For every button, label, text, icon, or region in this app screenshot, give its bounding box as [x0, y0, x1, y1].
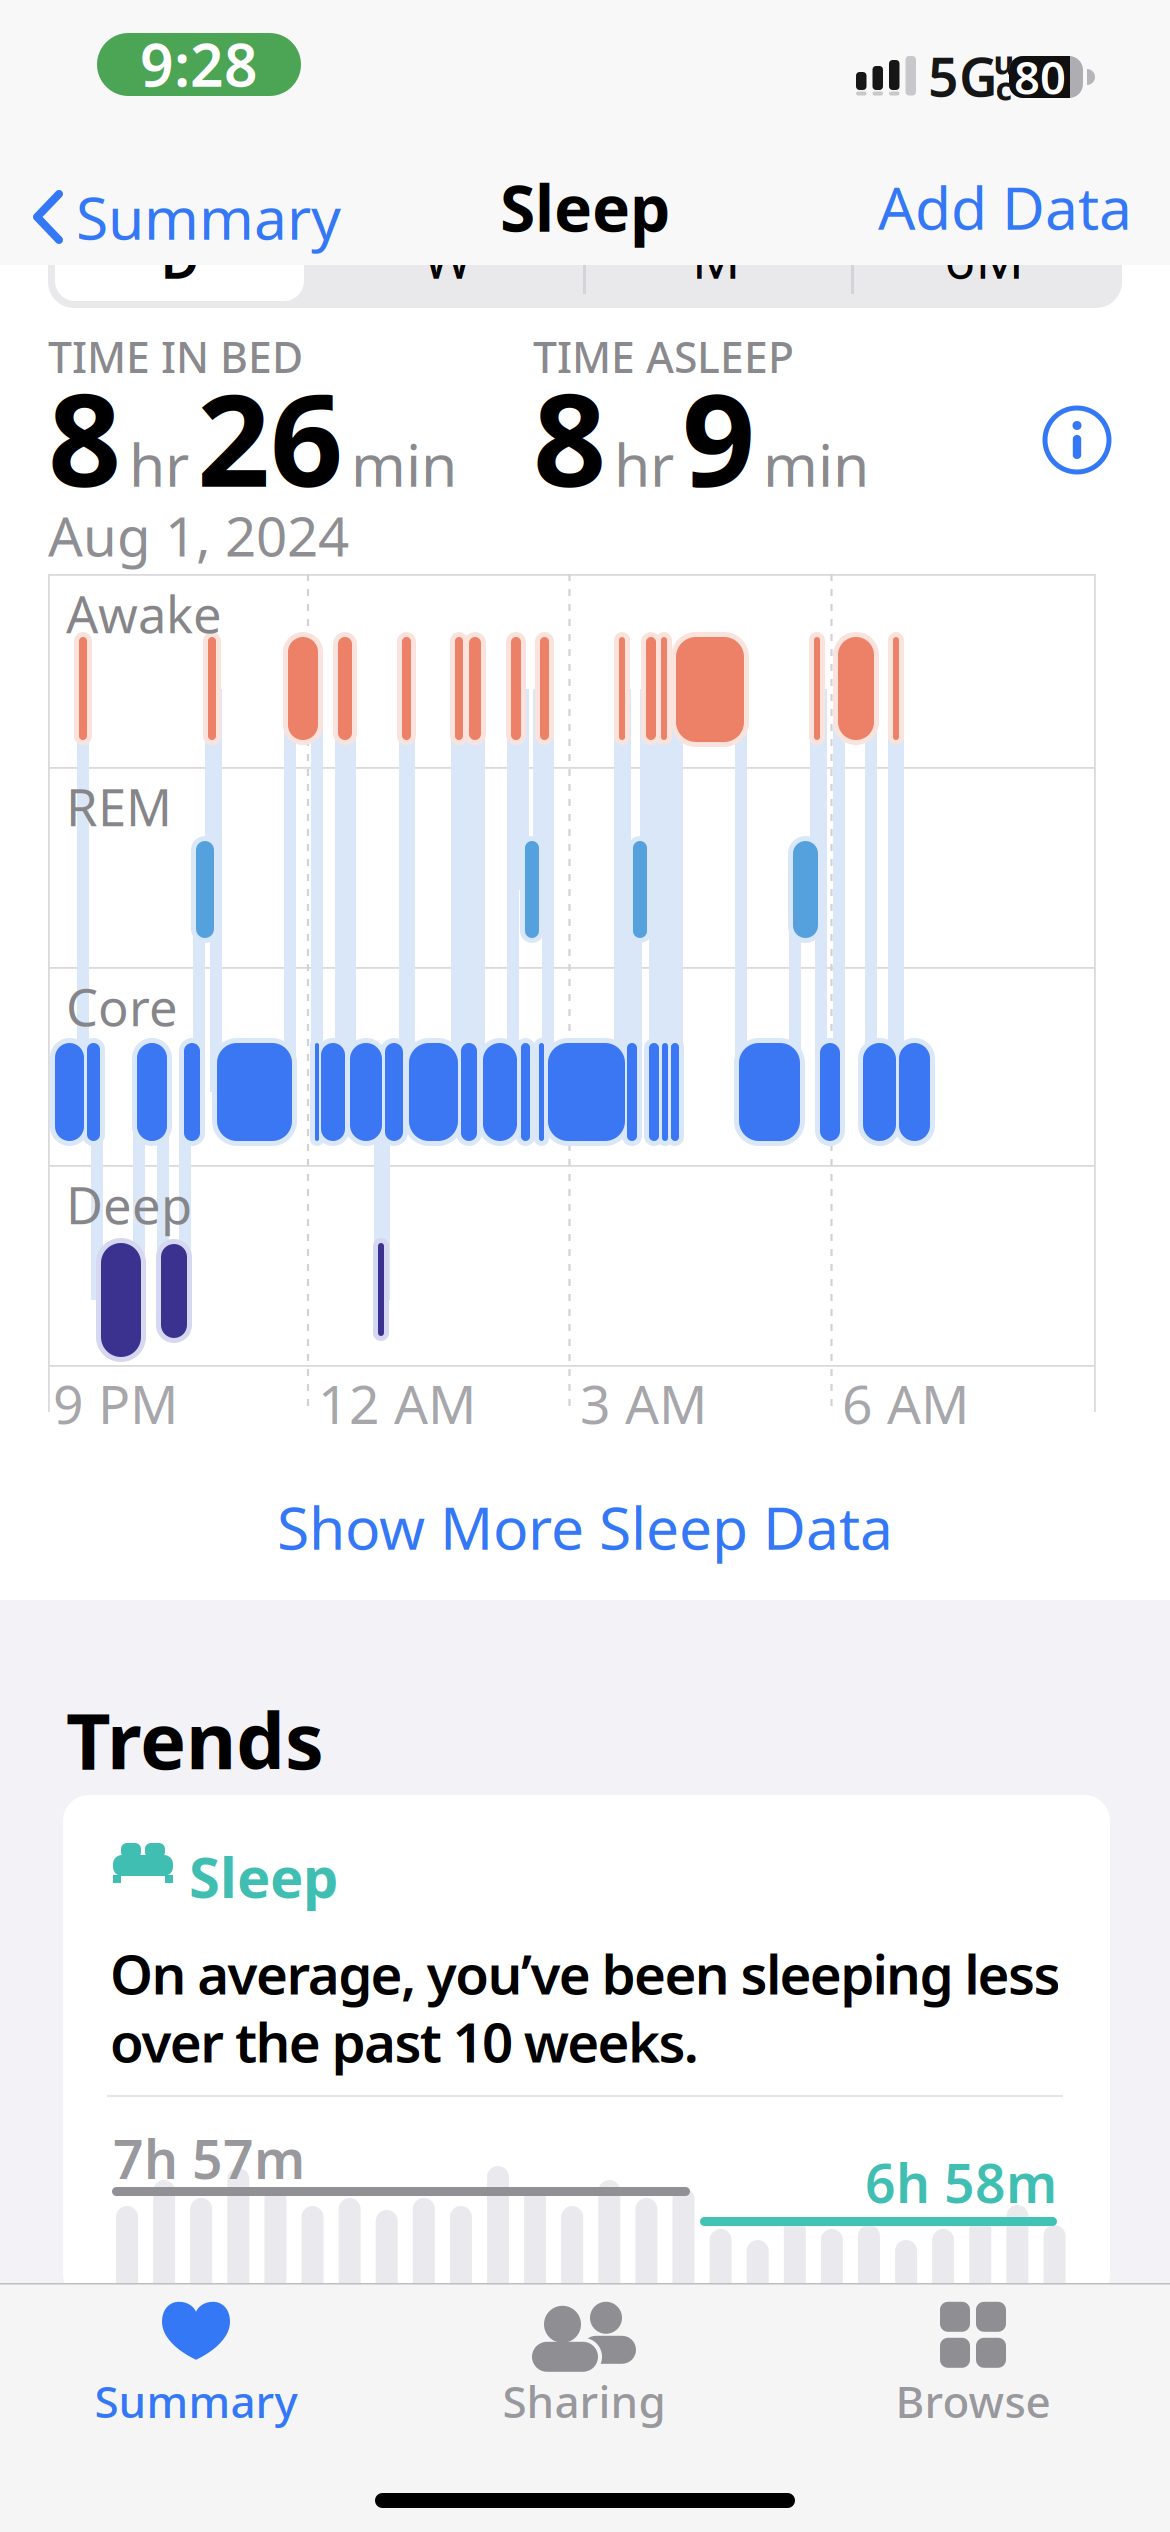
staticText: On average, you’ve been sleeping less	[110, 1937, 1060, 2010]
staticText: hr	[614, 425, 674, 503]
staticText: min	[351, 425, 457, 503]
staticText: Sleep	[189, 1839, 338, 1913]
button[interactable]: 6M	[859, 213, 1109, 303]
staticText: 9 PM	[53, 1368, 178, 1439]
button[interactable]: Summary	[32, 178, 341, 256]
staticText: TIME ASLEEP	[533, 328, 794, 385]
staticText: Awake	[66, 580, 222, 647]
staticText: 8	[48, 352, 121, 522]
button[interactable]: Sleep	[63, 1795, 1110, 2300]
staticText: c	[995, 67, 1012, 109]
staticText: Trends	[66, 1688, 324, 1791]
button[interactable]: M	[591, 213, 841, 303]
staticText: Summary	[94, 2372, 297, 2430]
staticText: 6M	[944, 223, 1023, 293]
button[interactable]: Add Data	[878, 168, 1132, 246]
button[interactable]: Browse	[895, 2300, 1050, 2430]
button[interactable]: W	[323, 213, 573, 303]
button[interactable]: Show More Sleep Data	[277, 1488, 893, 1566]
staticText: Browse	[895, 2372, 1050, 2430]
staticText: Add Data	[878, 168, 1132, 246]
staticText: 6 AM	[842, 1368, 969, 1439]
staticText: D	[160, 223, 199, 293]
staticText: Show More Sleep Data	[277, 1488, 893, 1566]
staticText: 5G	[928, 41, 998, 111]
staticText: Deep	[66, 1171, 192, 1238]
staticText: Core	[66, 973, 178, 1040]
staticText: 9	[682, 352, 755, 522]
button[interactable]: D	[55, 213, 305, 303]
staticText: 8	[533, 352, 606, 522]
staticText: REM	[66, 773, 172, 840]
staticText: 3 AM	[580, 1368, 707, 1439]
staticText: hr	[129, 425, 189, 503]
staticText: 12 AM	[318, 1368, 476, 1439]
staticText: 26	[197, 352, 343, 522]
staticText: 7h 57m	[113, 2123, 305, 2194]
staticText: W	[423, 223, 473, 293]
staticText: Summary	[76, 178, 341, 256]
staticText: M	[692, 223, 740, 293]
button[interactable]: Summary	[94, 2300, 297, 2430]
staticText: Sleep	[500, 164, 670, 249]
staticText: u	[993, 41, 1014, 83]
staticText: min	[763, 425, 869, 503]
staticText: Aug 1, 2024	[48, 499, 349, 572]
staticText: over the past 10 weeks.	[110, 2005, 699, 2078]
staticText: Sharing	[502, 2372, 665, 2430]
staticText: 6h 58m	[865, 2147, 1057, 2218]
staticText: 80	[1014, 47, 1066, 107]
staticText: TIME IN BED	[48, 328, 303, 385]
staticText: 9:28	[140, 25, 258, 103]
button[interactable]: Sharing	[502, 2300, 665, 2430]
button[interactable]: More info	[1041, 404, 1113, 476]
